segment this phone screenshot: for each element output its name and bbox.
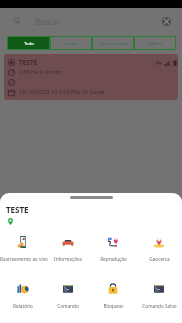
staticText: Online xyxy=(64,40,78,46)
button[interactable]: Limpar xyxy=(161,16,172,27)
button[interactable]: TESTE xyxy=(4,54,178,100)
staticText: Bloquear xyxy=(103,303,124,309)
button[interactable]: Bloquear xyxy=(90,282,136,309)
staticText: Reprodução xyxy=(100,256,127,262)
button[interactable]: Buscar xyxy=(0,8,182,34)
button[interactable]: Rastreamento ao vivo xyxy=(0,235,45,262)
button[interactable]: Reprodução xyxy=(90,235,136,262)
button[interactable]: Offline xyxy=(134,36,176,50)
staticText: Todo xyxy=(24,40,34,46)
button[interactable]: Relatório xyxy=(0,282,45,309)
button[interactable]: Comando xyxy=(45,282,90,309)
staticText: Informações xyxy=(54,256,82,262)
staticText: Buscar xyxy=(35,16,61,27)
button[interactable]: Todo xyxy=(7,36,50,50)
button[interactable]: Geocerca xyxy=(136,235,182,262)
staticText: Geocerca xyxy=(149,256,170,262)
staticText: Offline xyxy=(148,40,162,46)
staticText: TESTE xyxy=(19,58,38,67)
staticText: Comando Salvo xyxy=(142,303,177,309)
staticText: 18/10/2023 10:54:57há 12 horas xyxy=(19,88,105,96)
staticText: Desconectado xyxy=(99,40,128,46)
staticText: Relatório xyxy=(13,303,33,309)
button[interactable]: Online xyxy=(50,36,92,50)
staticText: Comando xyxy=(57,303,79,309)
button[interactable]: Informações xyxy=(45,235,90,262)
staticText: TESTE xyxy=(6,204,29,215)
button[interactable]: Desconectado xyxy=(92,36,134,50)
button[interactable]: Comando Salvo xyxy=(136,282,182,309)
staticText: Offline 0 Km/hr xyxy=(19,68,63,76)
staticText: Rastreamento ao vivo xyxy=(0,256,45,262)
